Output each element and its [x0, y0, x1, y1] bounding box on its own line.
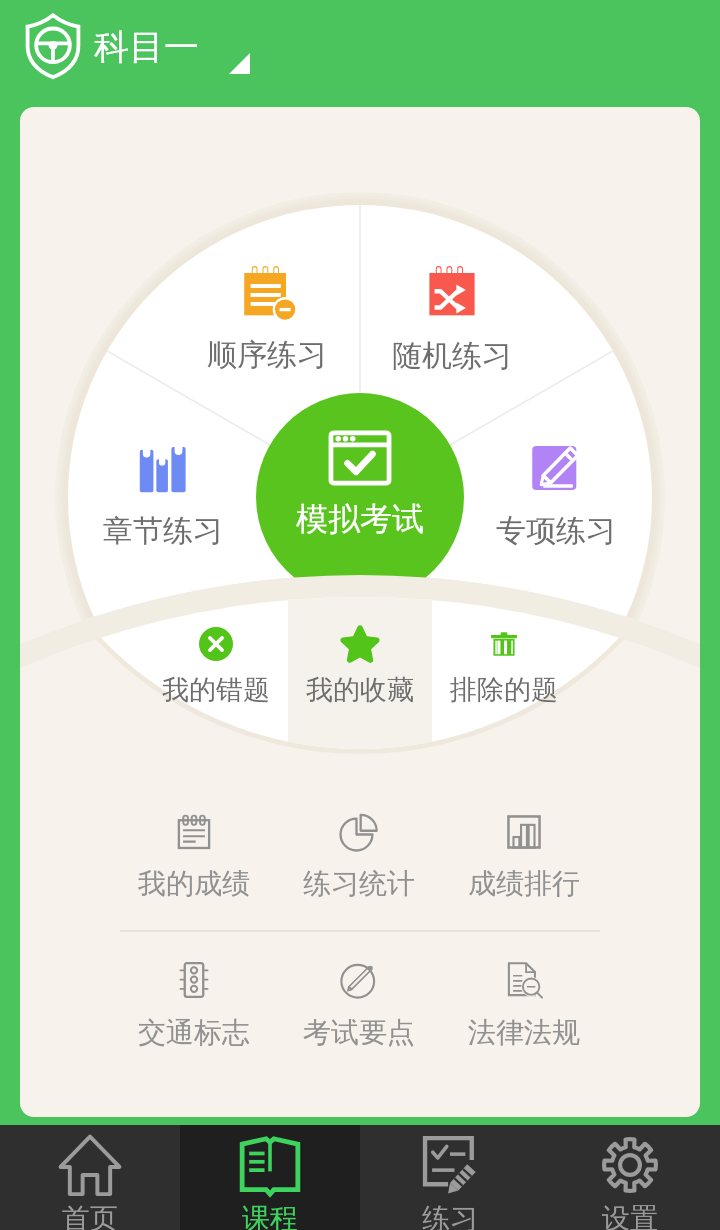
- staticText: 考试要点: [303, 1015, 415, 1050]
- staticText: 交通标志: [138, 1015, 250, 1050]
- button[interactable]: [370, 254, 534, 386]
- button[interactable]: [134, 617, 298, 718]
- button[interactable]: [112, 801, 276, 912]
- button[interactable]: 练习: [360, 1125, 540, 1230]
- staticText: 课程: [242, 1201, 298, 1230]
- button[interactable]: [92, 8, 262, 86]
- button[interactable]: App logo: [20, 13, 86, 79]
- staticText: 练习统计: [303, 866, 415, 901]
- button[interactable]: [278, 415, 442, 551]
- button[interactable]: [256, 393, 464, 601]
- button[interactable]: 课程: [180, 1125, 360, 1230]
- button[interactable]: [278, 617, 442, 718]
- button[interactable]: [112, 949, 276, 1061]
- staticText: 首页: [62, 1201, 118, 1230]
- staticText: 我的成绩: [138, 866, 250, 901]
- staticText: 我的收藏: [306, 673, 414, 707]
- staticText: 顺序练习: [207, 336, 327, 374]
- button[interactable]: [422, 617, 586, 718]
- staticText: 专项练习: [496, 512, 616, 550]
- button[interactable]: 设置: [540, 1125, 720, 1230]
- button[interactable]: [277, 801, 441, 912]
- staticText: 法律法规: [468, 1015, 580, 1050]
- staticText: 排除的题: [450, 673, 558, 707]
- button[interactable]: [442, 801, 606, 912]
- staticText: 章节练习: [103, 512, 223, 550]
- staticText: 科目一: [94, 25, 199, 69]
- staticText: 练习: [422, 1201, 478, 1230]
- button[interactable]: [81, 430, 245, 561]
- button[interactable]: [474, 429, 638, 561]
- staticText: 我的错题: [162, 673, 270, 707]
- staticText: 设置: [602, 1201, 658, 1230]
- button[interactable]: 首页: [0, 1125, 180, 1230]
- staticText: 随机练习: [392, 337, 512, 375]
- button[interactable]: [185, 254, 349, 385]
- button[interactable]: [277, 949, 441, 1061]
- button[interactable]: [442, 949, 606, 1061]
- staticText: 模拟考试: [296, 499, 424, 539]
- staticText: 成绩排行: [468, 866, 580, 901]
